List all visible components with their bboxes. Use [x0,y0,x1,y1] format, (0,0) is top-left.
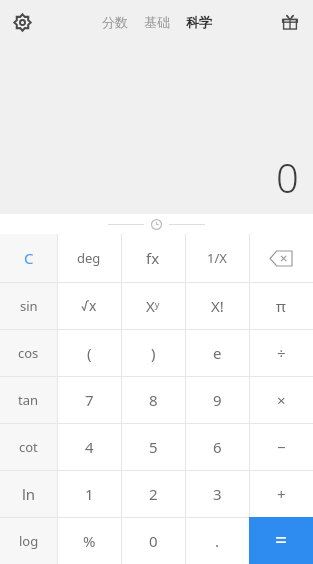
button[interactable]: 分数 [99,10,131,34]
staticText: 6 [213,437,222,457]
staticText: ( [87,343,92,363]
other: Backspace [249,234,313,282]
button[interactable]: − [249,423,313,470]
button[interactable]: sin [0,282,57,329]
button[interactable]: 基础 [141,10,173,34]
button[interactable]: tan [0,376,57,423]
staticText: sin [20,297,38,315]
button[interactable]: 4 [57,423,121,470]
button[interactable]: deg [57,234,121,282]
staticText: 1/X [207,249,227,267]
staticText: 3 [213,484,222,504]
staticText: % [83,531,96,551]
staticText: 分数 [102,14,128,30]
staticText: 基础 [144,14,170,30]
staticText: 2 [149,484,158,504]
staticText: = [275,526,288,555]
staticText: 5 [149,437,158,457]
button[interactable]: ) [121,329,185,376]
button[interactable]: e [185,329,249,376]
staticText: tan [18,391,39,409]
button[interactable]: fx [121,234,185,282]
staticText: 8 [149,390,158,410]
button[interactable]: % [57,517,121,564]
staticText: 0 [276,150,299,204]
button[interactable]: Settings [6,6,38,38]
button[interactable]: X! [185,282,249,329]
button[interactable]: History [0,214,313,234]
staticText: 4 [85,437,94,457]
staticText: × [277,390,286,410]
button[interactable]: ln [0,470,57,517]
button[interactable]: 2 [121,470,185,517]
button[interactable]: 5 [121,423,185,470]
button[interactable]: x [57,282,121,329]
button[interactable]: Xy [121,282,185,329]
staticText: 9 [213,390,222,410]
button[interactable]: 8 [121,376,185,423]
button[interactable]: cos [0,329,57,376]
staticText: ) [151,343,156,363]
staticText: ÷ [277,343,286,363]
staticText: e [213,343,222,363]
staticText: deg [77,249,101,267]
button[interactable]: C [0,234,57,282]
button[interactable]: Gift [275,7,305,37]
staticText: 1 [85,484,94,504]
staticText: − [277,437,286,457]
button[interactable]: + [249,470,313,517]
staticText: 7 [85,390,94,410]
button[interactable]: ÷ [249,329,313,376]
button[interactable]: π [249,282,313,329]
staticText: X! [211,296,224,316]
button[interactable]: 6 [185,423,249,470]
staticText: fx [146,248,160,268]
staticText: . [215,531,220,551]
button[interactable]: 1 [57,470,121,517]
button[interactable]: Backspace [249,234,313,282]
staticText: 科学 [186,14,212,30]
button[interactable]: 3 [185,470,249,517]
button[interactable]: = [249,517,313,564]
staticText: Xy [146,296,160,316]
staticText: ln [22,484,36,504]
button[interactable]: . [185,517,249,564]
button[interactable]: 9 [185,376,249,423]
staticText: cos [18,344,39,362]
staticText: cot [19,438,38,456]
button[interactable]: 1/X [185,234,249,282]
button[interactable]: × [249,376,313,423]
button[interactable]: 科学 [183,10,215,34]
staticText: + [277,484,286,504]
staticText: C [24,248,34,268]
button[interactable]: log [0,517,57,564]
button[interactable]: 0 [121,517,185,564]
button[interactable]: ( [57,329,121,376]
button[interactable]: 7 [57,376,121,423]
staticText: 0 [149,531,158,551]
staticText: x [89,296,97,315]
button[interactable]: cot [0,423,57,470]
staticText: π [276,296,286,316]
staticText: log [19,532,39,550]
